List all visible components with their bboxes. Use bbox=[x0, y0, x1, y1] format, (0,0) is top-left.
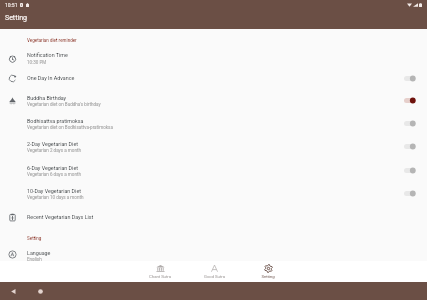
button[interactable]: Buddha Birthday bbox=[0, 91, 427, 114]
staticText: English bbox=[27, 257, 42, 262]
staticText: Vegetarian diet on Buddha's birthday bbox=[27, 102, 101, 107]
staticText: Vegetarian 6 days a month bbox=[27, 172, 81, 177]
button[interactable]: 2-Day Vegetarian Diet bbox=[0, 137, 427, 160]
staticText: 10-Day Vegetarian Diet bbox=[27, 188, 82, 194]
button[interactable]: Bodhisattva pratimoksa bbox=[0, 114, 427, 137]
button[interactable]: Setting bbox=[241, 261, 295, 282]
button[interactable]: Switch off bbox=[402, 71, 418, 85]
staticText: Good Sutra bbox=[204, 274, 225, 279]
button[interactable]: 10-Day Vegetarian Diet bbox=[0, 184, 427, 207]
staticText: Vegetarian diet on Bodhisattva-pratimoks… bbox=[27, 125, 113, 130]
button[interactable]: Switch off bbox=[402, 139, 418, 153]
staticText: Setting bbox=[27, 236, 42, 241]
button[interactable]: Back bbox=[9, 287, 18, 296]
button[interactable]: Good Sutra bbox=[187, 261, 241, 282]
staticText: 10:30 PM bbox=[27, 60, 47, 65]
staticText: 2-Day Vegetarian Diet bbox=[27, 141, 79, 147]
button[interactable]: 6-Day Vegetarian Diet bbox=[0, 161, 427, 184]
staticText: Recent Vegetarian Days List bbox=[27, 214, 94, 220]
staticText: Chant Sutra bbox=[149, 274, 171, 279]
staticText: Buddha Birthday bbox=[27, 95, 67, 101]
staticText: Language bbox=[27, 250, 51, 256]
staticText: 10:51 bbox=[5, 2, 18, 8]
staticText: Notification Time bbox=[27, 52, 68, 58]
staticText: Vegetarian diet reminder bbox=[27, 38, 77, 43]
staticText: 6-Day Vegetarian Diet bbox=[27, 165, 79, 171]
button[interactable]: Switch off bbox=[402, 163, 418, 177]
button[interactable]: Switch off bbox=[402, 186, 418, 200]
button[interactable]: Chant Sutra bbox=[133, 261, 187, 282]
staticText: Setting bbox=[261, 274, 275, 279]
button[interactable]: Recent Vegetarian Days List bbox=[0, 210, 427, 231]
button[interactable]: Switch off bbox=[402, 116, 418, 130]
button[interactable]: Switch on bbox=[402, 93, 418, 107]
staticText: Vegetarian 10 days a month bbox=[27, 195, 84, 200]
staticText: Bodhisattva pratimoksa bbox=[27, 118, 84, 124]
button[interactable]: One Day In Advance bbox=[0, 71, 427, 92]
staticText: Vegetarian 2 days a month bbox=[27, 148, 81, 153]
button[interactable]: Home bbox=[36, 287, 45, 296]
button[interactable]: Notification Time bbox=[0, 48, 427, 71]
staticText: One Day In Advance bbox=[27, 75, 75, 81]
button[interactable]: Language bbox=[0, 246, 427, 269]
staticText: Setting bbox=[5, 14, 27, 22]
